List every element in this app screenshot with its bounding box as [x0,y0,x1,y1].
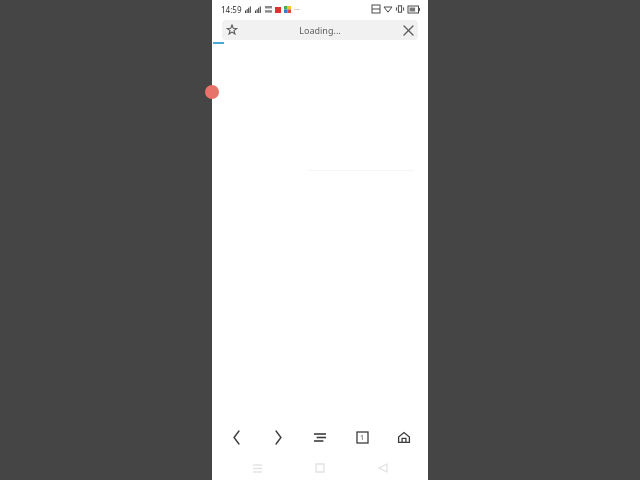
button[interactable]: Tabs [344,420,380,454]
button[interactable]: Recent apps [239,456,275,480]
button[interactable]: Close [398,20,418,40]
button[interactable]: Menu [302,420,338,454]
button[interactable]: Bookmark [222,20,242,40]
button[interactable]: Home [302,456,338,480]
staticText: 14:59 [221,4,242,15]
button[interactable]: Back [218,420,254,454]
button[interactable]: Forward [260,420,296,454]
staticText: Loading... [242,24,398,36]
staticText: 1 [360,433,365,443]
button[interactable]: Back [365,456,401,480]
button[interactable]: Home [386,420,422,454]
staticText: ··· [294,5,300,15]
